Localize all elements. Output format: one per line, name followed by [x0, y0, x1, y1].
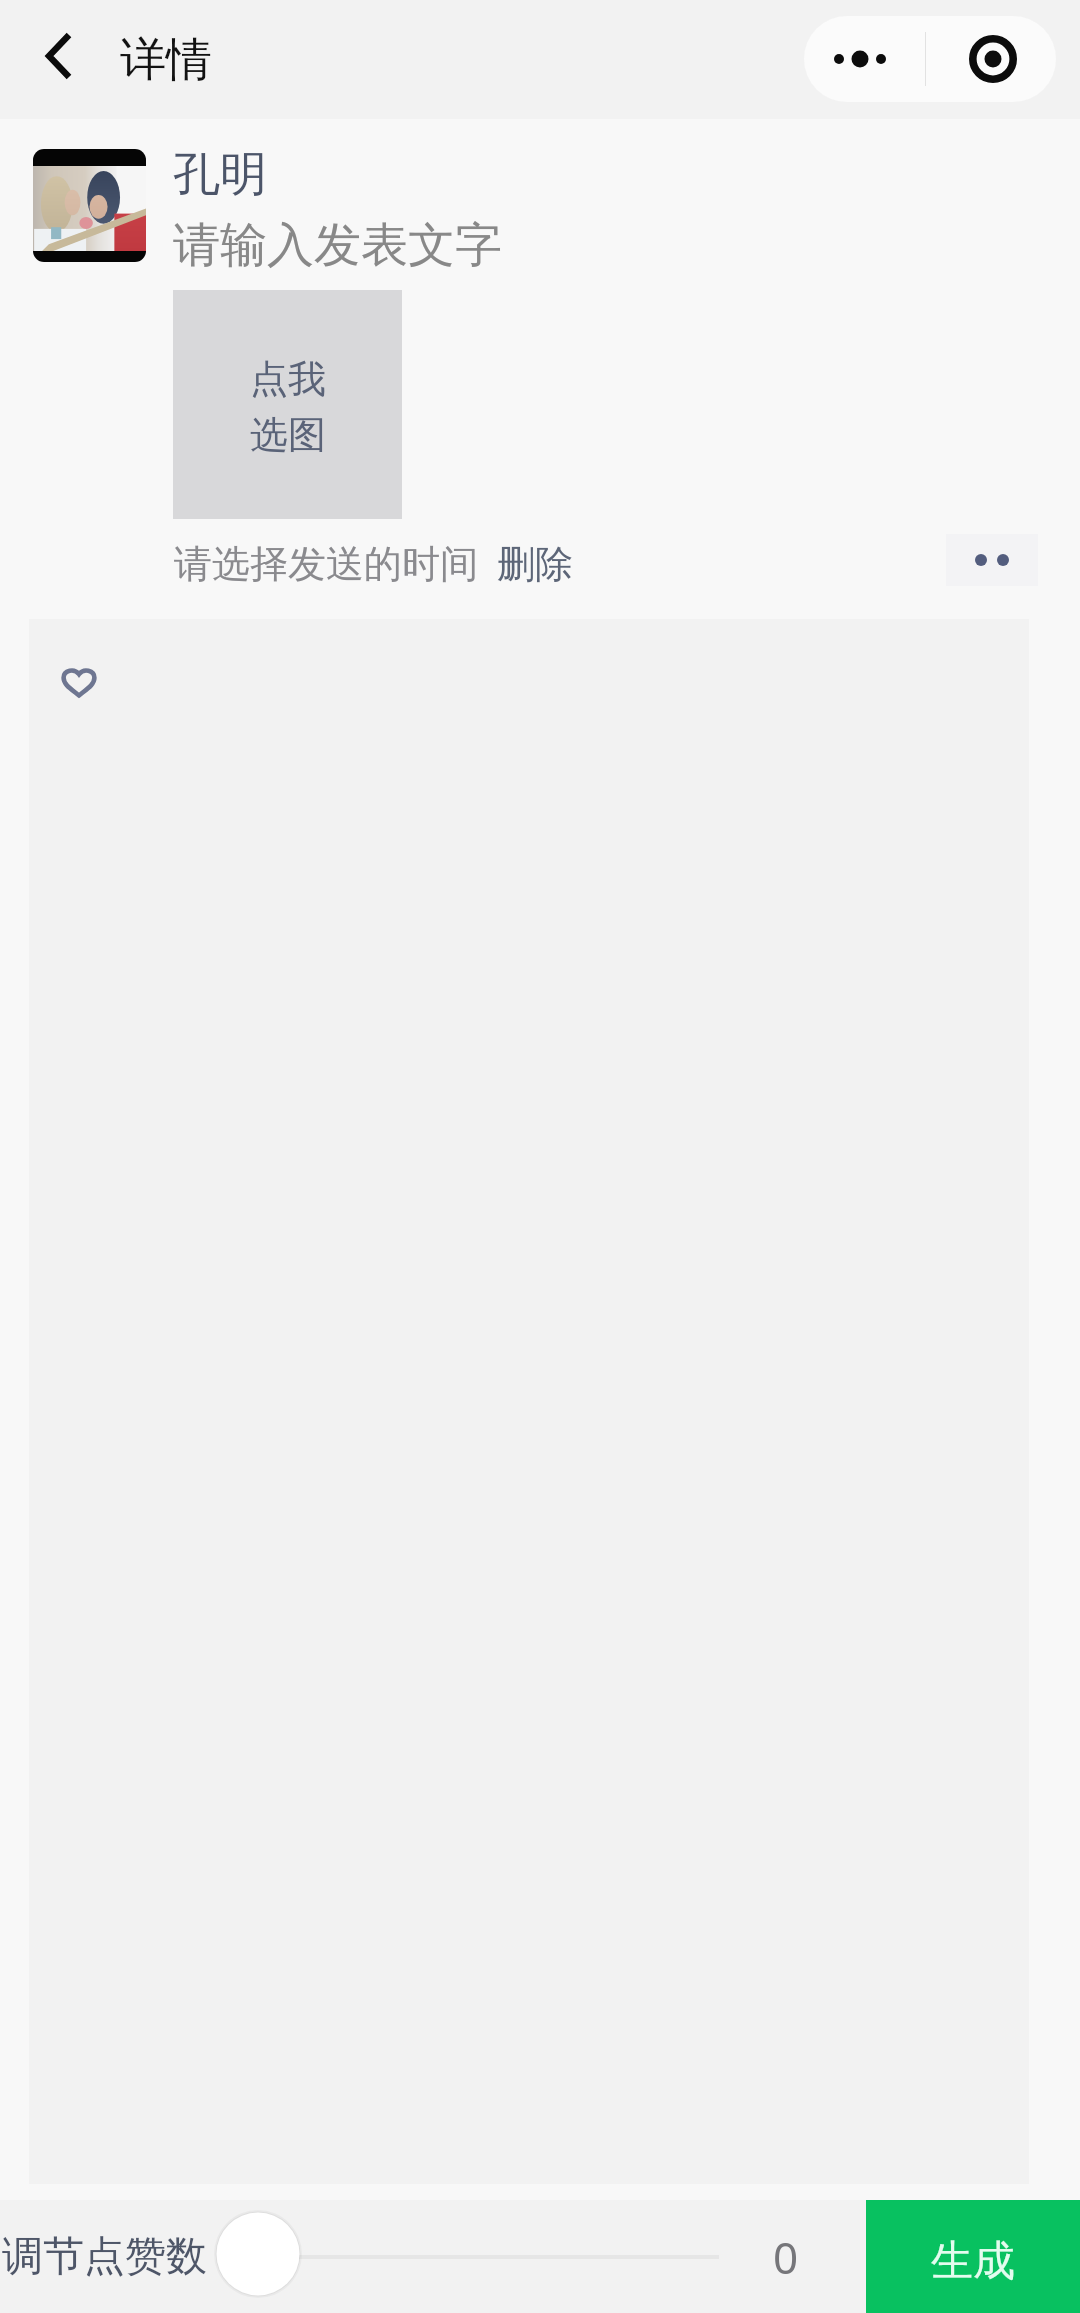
button[interactable]: 生成: [866, 2200, 1080, 2313]
button[interactable]: Back: [25, 17, 93, 95]
button[interactable]: Adjust like count: [213, 2209, 303, 2299]
staticText: 调节点赞数: [2, 2231, 207, 2283]
button[interactable]: Like: [61, 667, 97, 698]
button[interactable]: More: [804, 16, 916, 102]
button[interactable]: 请选择发送的时间: [174, 540, 478, 588]
button[interactable]: 点我 选图: [173, 290, 402, 519]
button[interactable]: 孔明: [173, 145, 267, 204]
button[interactable]: 请输入发表文字: [173, 216, 502, 275]
button[interactable]: More options: [946, 534, 1038, 586]
staticText: 0: [773, 2227, 799, 2287]
button[interactable]: Avatar: [33, 149, 146, 262]
staticText: 详情: [120, 31, 212, 89]
button[interactable]: Close: [930, 16, 1056, 102]
button[interactable]: 删除: [497, 540, 573, 588]
staticText: 生成: [931, 2235, 1015, 2288]
staticText: 点我 选图: [250, 355, 326, 459]
